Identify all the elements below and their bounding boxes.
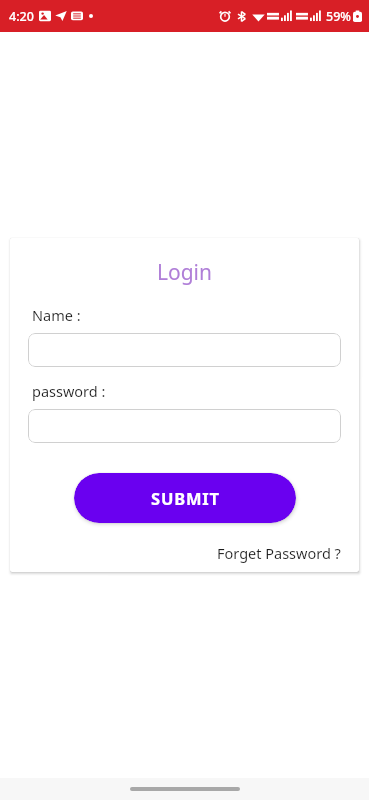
staticText: Login (10, 258, 359, 287)
staticText: Name : (32, 305, 81, 325)
staticText: SUBMIT (151, 487, 220, 509)
button[interactable]: SUBMIT (74, 473, 296, 523)
staticText: 59% (326, 8, 351, 25)
staticText: Forget Password ? (217, 543, 341, 563)
staticText: 4:20 (9, 8, 34, 25)
button[interactable]: Text input (28, 409, 341, 443)
staticText: password : (32, 381, 106, 401)
button[interactable]: Text input (28, 333, 341, 367)
button[interactable]: Forget Password ? (217, 543, 359, 563)
